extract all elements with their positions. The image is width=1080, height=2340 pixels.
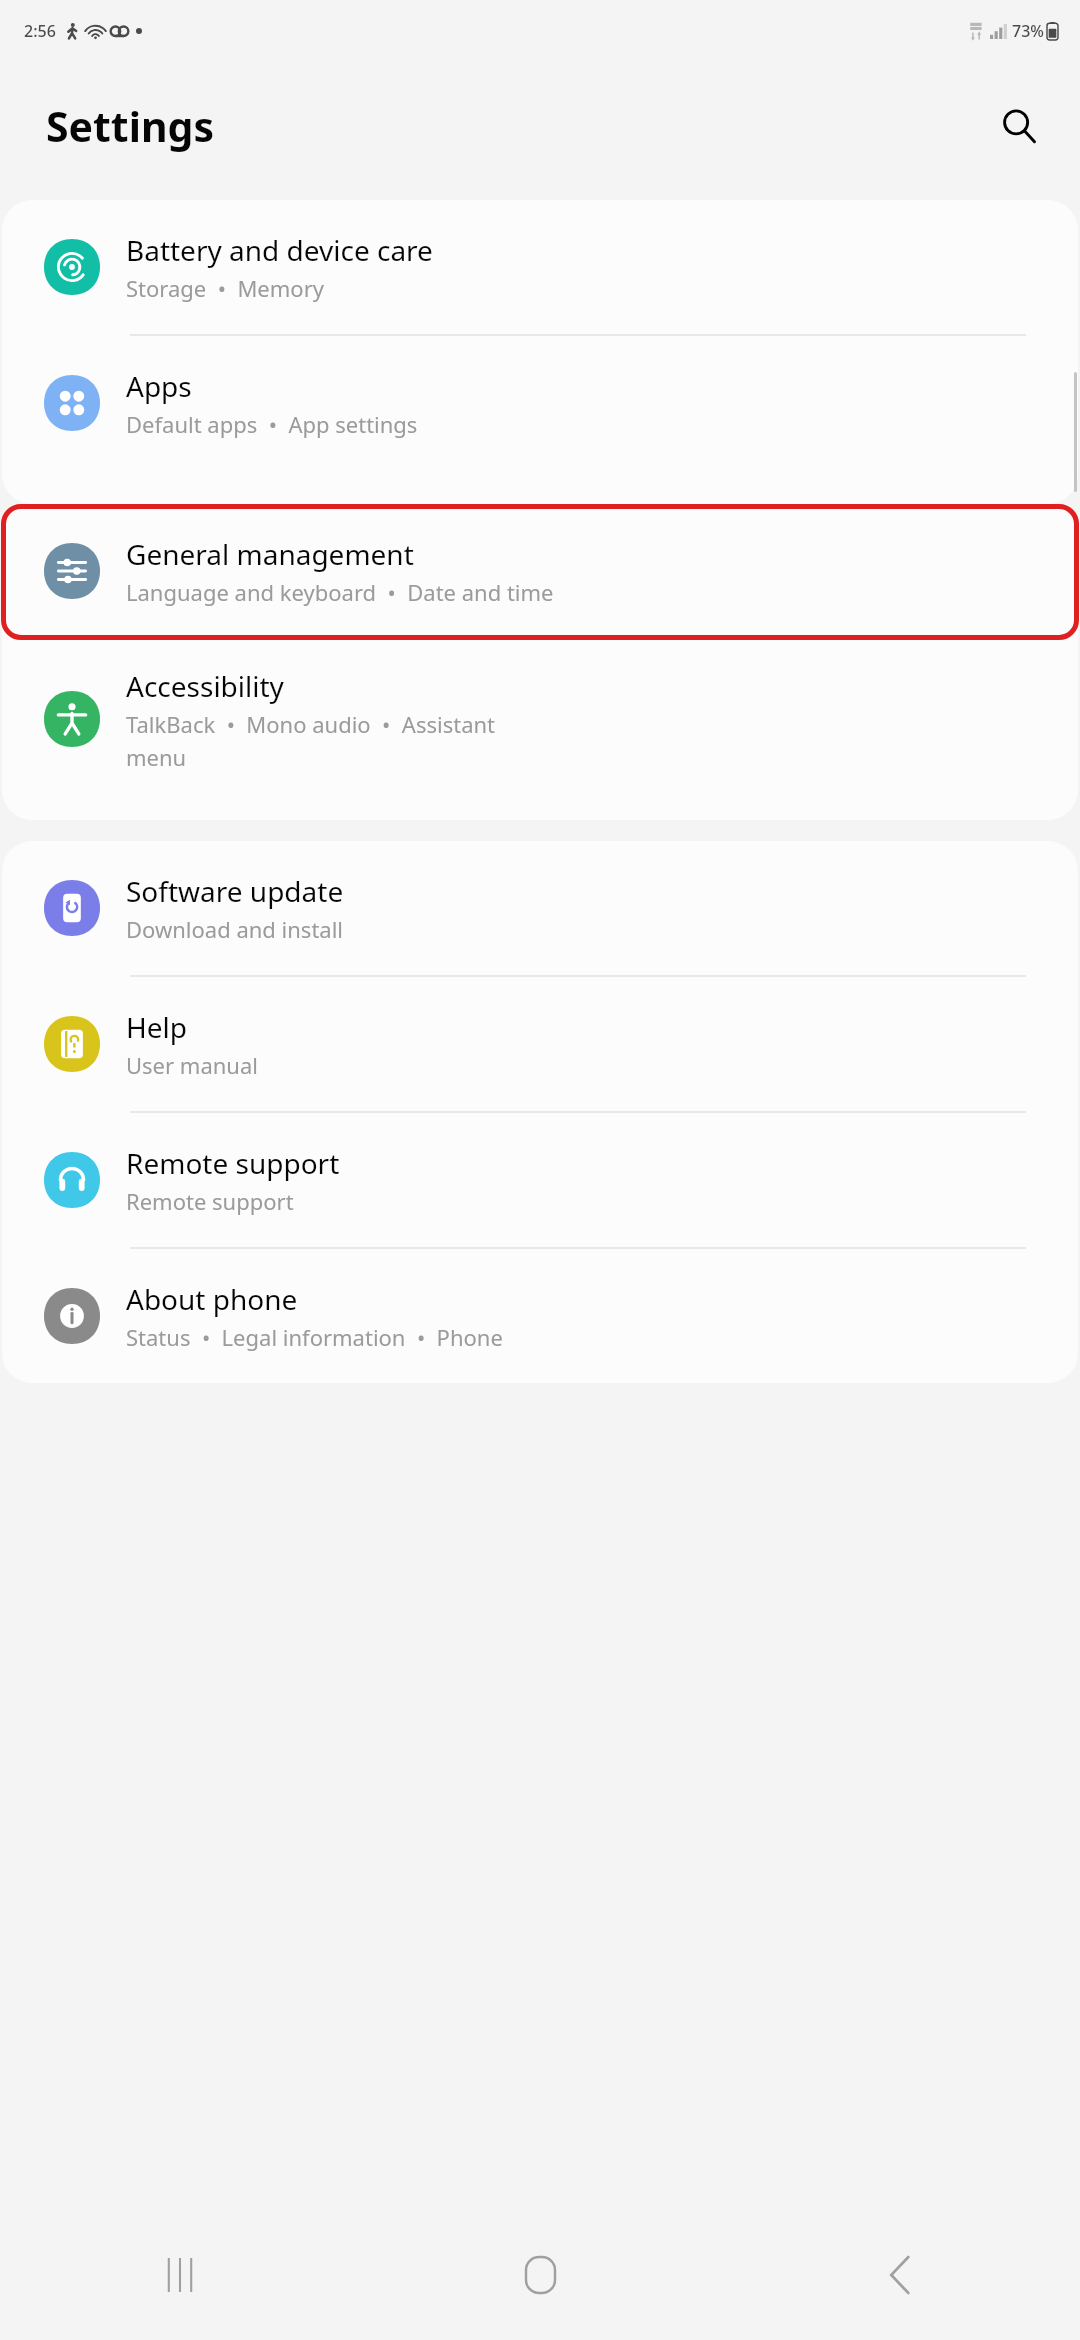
staticText: Remote support (126, 1144, 340, 1182)
button[interactable]: Accessibility (2, 640, 1078, 798)
button[interactable]: About phone (2, 1249, 1078, 1383)
staticText: Storage • Memory (126, 273, 324, 303)
staticText: 2:56 (24, 20, 56, 42)
button[interactable]: Back (720, 2210, 1080, 2340)
staticText: Apps (126, 367, 192, 405)
button[interactable]: Software update (2, 841, 1078, 975)
staticText: Download and install (126, 914, 344, 944)
staticText: 73% (1012, 20, 1044, 42)
staticText: Remote support (126, 1186, 294, 1216)
button[interactable]: Remote support (2, 1113, 1078, 1247)
button[interactable]: Battery and device care (2, 200, 1078, 334)
staticText: Default apps • App settings (126, 409, 418, 439)
staticText: Help (126, 1008, 187, 1046)
staticText: Settings (46, 98, 215, 154)
button[interactable]: Recent apps (0, 2210, 360, 2340)
staticText: About phone (126, 1280, 298, 1318)
staticText: Status • Legal information • Phone (126, 1322, 503, 1352)
staticText: TalkBack • Mono audio • Assistant menu (126, 709, 496, 772)
button[interactable]: Search (984, 91, 1054, 161)
staticText: Software update (126, 872, 344, 910)
staticText: General management (126, 535, 414, 573)
button[interactable]: Apps (2, 336, 1078, 470)
staticText: Accessibility (126, 667, 284, 705)
button[interactable]: Help (2, 977, 1078, 1111)
staticText: Battery and device care (126, 231, 433, 269)
button[interactable]: General management (2, 504, 1078, 638)
staticText: Language and keyboard • Date and time (126, 577, 554, 607)
button[interactable]: Home (360, 2210, 720, 2340)
staticText: User manual (126, 1050, 258, 1080)
